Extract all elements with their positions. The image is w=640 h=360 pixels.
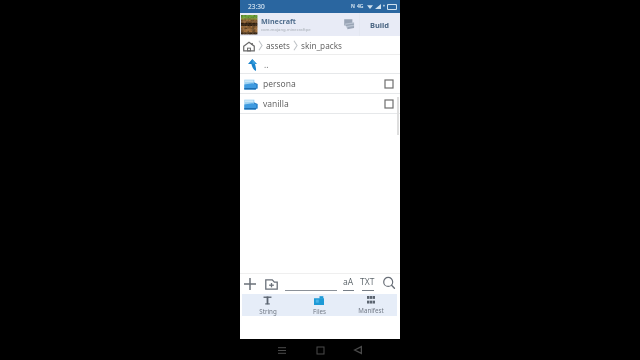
button[interactable]: .. (240, 55, 400, 74)
staticText: com.mojang.minecraftpe (261, 27, 311, 33)
staticText: String (259, 307, 277, 315)
staticText: TXT (360, 276, 375, 288)
staticText: Minecraft (261, 16, 296, 26)
button[interactable]: Home (313, 343, 327, 357)
button[interactable]: String (242, 294, 293, 316)
button[interactable]: Select persona (383, 78, 395, 90)
staticText: 4G (357, 3, 364, 10)
staticText: Files (313, 307, 326, 315)
button[interactable]: Manifest (345, 294, 397, 316)
staticText: Build (370, 20, 390, 30)
button[interactable]: TXT (360, 276, 375, 291)
staticText: • (383, 3, 385, 10)
staticText: persona (263, 78, 296, 90)
staticText: Manifest (358, 306, 384, 314)
button[interactable]: Select vanilla (383, 98, 395, 110)
button[interactable]: Search (382, 276, 397, 291)
button[interactable]: Add file (243, 277, 257, 291)
staticText: vanilla (263, 98, 289, 110)
staticText: N (351, 3, 355, 10)
button[interactable]: New folder (264, 277, 278, 291)
button[interactable]: Files (293, 294, 345, 316)
button[interactable]: persona (240, 74, 400, 94)
button[interactable]: aA (343, 276, 354, 291)
button[interactable]: Back (351, 343, 365, 357)
staticText: .. (264, 59, 269, 70)
button[interactable]: vanilla (240, 94, 400, 114)
button[interactable]: assets (264, 40, 292, 51)
staticText: 23:30 (248, 2, 265, 11)
button[interactable]: Build (360, 13, 400, 36)
button[interactable] (285, 273, 337, 294)
button[interactable]: Layers (339, 13, 359, 36)
staticText: skin_packs (301, 40, 342, 51)
button[interactable]: skin_packs (299, 40, 344, 51)
button[interactable]: Recents (275, 343, 289, 357)
staticText: aA (343, 276, 354, 288)
button[interactable]: Home (242, 39, 256, 53)
staticText: assets (266, 40, 290, 51)
